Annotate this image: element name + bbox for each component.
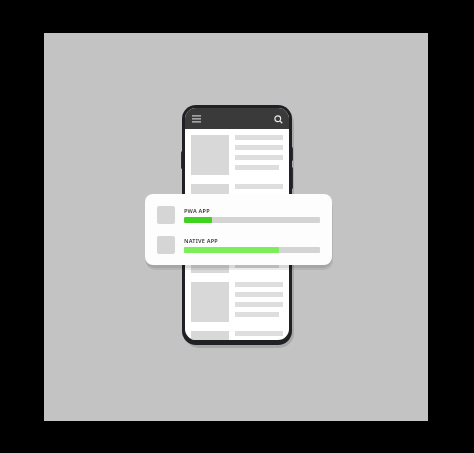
staticText: PWA APP (184, 207, 210, 214)
button[interactable]: Search (272, 113, 284, 125)
button[interactable]: PWA APP (157, 204, 320, 226)
button[interactable]: NATIVE APP (157, 234, 320, 255)
staticText: NATIVE APP (184, 237, 218, 244)
button[interactable]: Menu (190, 113, 202, 125)
